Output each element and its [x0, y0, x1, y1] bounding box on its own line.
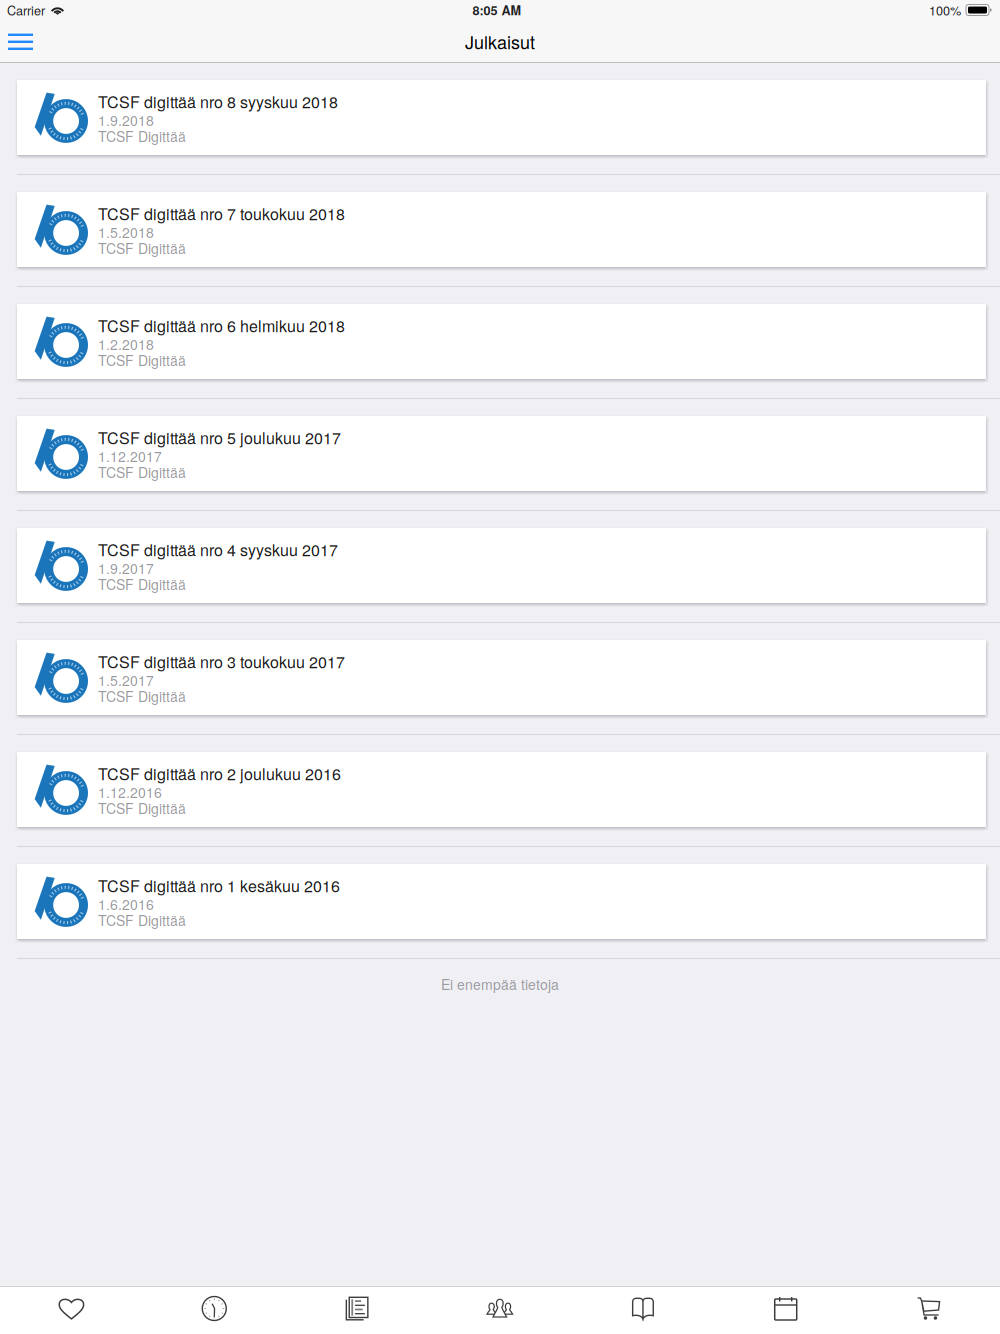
staticText: TCSF Digittää	[98, 350, 186, 370]
staticText: TCSF digittää nro 2 joulukuu 2016	[98, 762, 341, 785]
button[interactable]: News	[286, 1286, 429, 1334]
staticText: 1.9.2017	[98, 558, 154, 578]
staticText: TCSF digittää nro 7 toukokuu 2018	[98, 202, 345, 225]
staticText: 1.9.2018	[98, 110, 154, 130]
staticText: 8:05 AM	[472, 1, 521, 19]
staticText: TCSF digittää nro 8 syyskuu 2018	[98, 90, 338, 113]
button[interactable]: Recent	[143, 1286, 286, 1334]
staticText: TCSF digittää nro 3 toukokuu 2017	[98, 650, 345, 673]
button[interactable]: TCSF digittää nro 3 toukokuu 2017	[17, 640, 986, 715]
staticText: 1.5.2017	[98, 670, 154, 690]
button[interactable]: TCSF digittää nro 4 syyskuu 2017	[17, 528, 986, 603]
staticText: TCSF Digittää	[98, 574, 186, 594]
button[interactable]: TCSF digittää nro 2 joulukuu 2016	[17, 752, 986, 827]
staticText: 1.2.2018	[98, 334, 154, 354]
staticText: TCSF Digittää	[98, 798, 186, 818]
button[interactable]: TCSF digittää nro 1 kesäkuu 2016	[17, 864, 986, 939]
staticText: TCSF digittää nro 5 joulukuu 2017	[98, 426, 341, 449]
staticText: Julkaisut	[465, 29, 535, 54]
button[interactable]: TCSF digittää nro 6 helmikuu 2018	[17, 304, 986, 379]
button[interactable]: Members	[429, 1286, 571, 1334]
button[interactable]: Calendar	[714, 1286, 857, 1334]
button[interactable]: TCSF digittää nro 7 toukokuu 2018	[17, 192, 986, 267]
button[interactable]: TCSF digittää nro 5 joulukuu 2017	[17, 416, 986, 491]
staticText: Ei enempää tietoja	[441, 974, 559, 994]
staticText: TCSF digittää nro 4 syyskuu 2017	[98, 538, 338, 561]
button[interactable]: Shop	[857, 1286, 1000, 1334]
staticText: TCSF Digittää	[98, 686, 186, 706]
staticText: 100%	[929, 1, 961, 19]
button[interactable]: Publications	[571, 1286, 714, 1334]
staticText: TCSF Digittää	[98, 462, 186, 482]
staticText: 1.5.2018	[98, 222, 154, 242]
staticText: TCSF digittää nro 1 kesäkuu 2016	[98, 874, 340, 897]
staticText: TCSF Digittää	[98, 126, 186, 146]
staticText: Carrier	[7, 1, 45, 19]
staticText: TCSF digittää nro 6 helmikuu 2018	[98, 314, 345, 337]
staticText: TCSF Digittää	[98, 238, 186, 258]
staticText: TCSF Digittää	[98, 910, 186, 930]
staticText: 1.12.2016	[98, 782, 162, 802]
staticText: 1.6.2016	[98, 894, 154, 914]
staticText: 1.12.2017	[98, 446, 162, 466]
button[interactable]: Favourites	[0, 1286, 143, 1334]
button[interactable]: Menu	[0, 23, 49, 59]
button[interactable]: TCSF digittää nro 8 syyskuu 2018	[17, 80, 986, 155]
